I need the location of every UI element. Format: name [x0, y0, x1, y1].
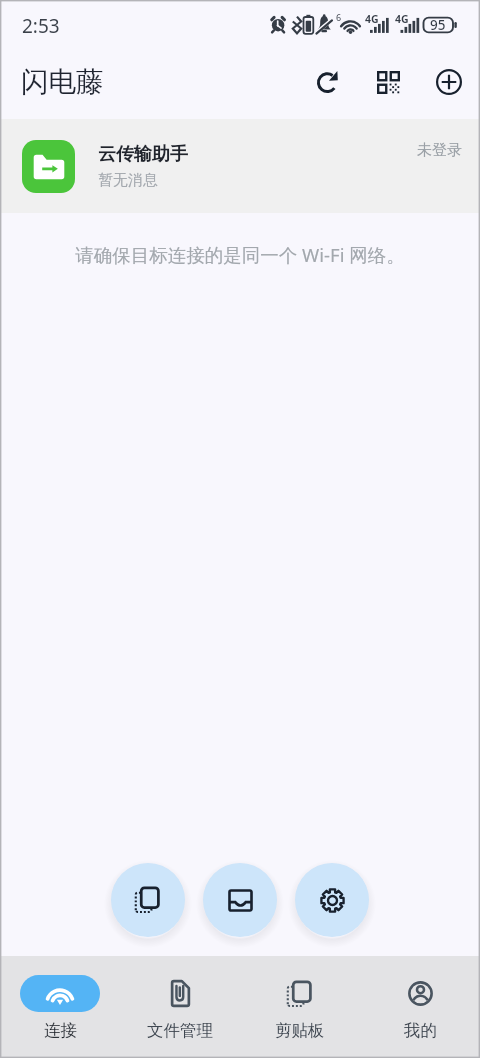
button[interactable]: 文件管理 — [120, 956, 240, 1041]
staticText: 4G — [395, 12, 409, 26]
button[interactable]: Mirror screen — [111, 863, 185, 937]
button[interactable]: Add — [427, 60, 471, 104]
staticText: 我的 — [404, 1020, 437, 1041]
button[interactable]: 我的 — [360, 956, 480, 1041]
staticText: 2:53 — [22, 13, 60, 39]
button[interactable]: 剪贴板 — [240, 956, 360, 1041]
staticText: 4G — [365, 12, 379, 26]
staticText: 云传输助手 — [98, 143, 188, 166]
staticText: 6 — [336, 11, 342, 23]
button[interactable]: Inbox — [203, 863, 277, 937]
button[interactable]: 云传输助手 — [0, 119, 480, 213]
button[interactable]: Settings — [295, 863, 369, 937]
staticText: 闪电藤 — [21, 65, 104, 100]
staticText: 95 — [430, 16, 446, 34]
staticText: 文件管理 — [147, 1020, 213, 1041]
button[interactable]: 连接 — [0, 956, 120, 1041]
staticText: 连接 — [44, 1020, 77, 1041]
button[interactable]: Refresh — [306, 60, 350, 104]
staticText: 未登录 — [417, 141, 462, 160]
staticText: 暂无消息 — [98, 171, 158, 190]
button[interactable]: Scan QR code — [366, 60, 410, 104]
staticText: 请确保目标连接的是同一个 Wi-Fi 网络。 — [0, 242, 480, 267]
staticText: 剪贴板 — [275, 1020, 325, 1041]
